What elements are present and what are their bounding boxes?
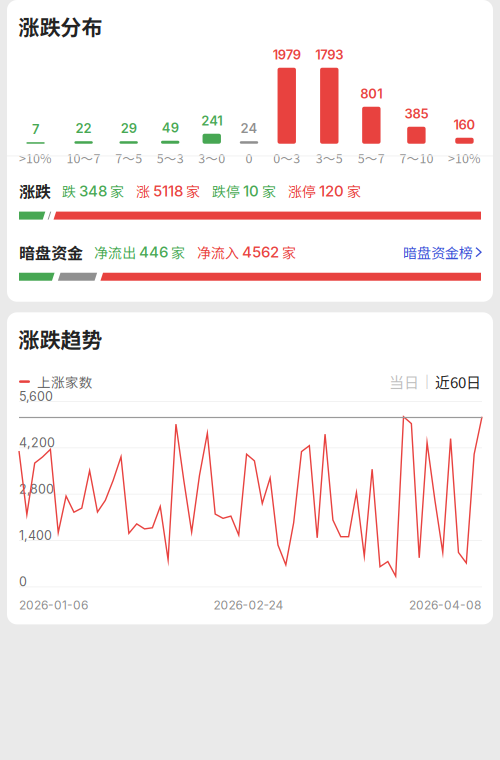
staticText: 5118 <box>153 182 183 200</box>
staticText: 1,400 <box>19 528 52 543</box>
staticText: 241 <box>201 113 222 129</box>
staticText: 家 <box>347 181 361 201</box>
staticText: 涨 <box>136 181 150 201</box>
button[interactable]: 近60日 <box>435 371 481 392</box>
staticText: 7～10 <box>399 149 433 167</box>
staticText: 5～7 <box>358 149 385 167</box>
staticText: 涨跌 <box>19 179 51 203</box>
staticText: 3～5 <box>316 149 343 167</box>
staticText: 净流入 <box>197 242 239 262</box>
staticText: 22 <box>76 120 92 136</box>
staticText: 净流出 <box>94 242 136 262</box>
staticText: >10% <box>19 149 52 167</box>
staticText: >10% <box>448 149 481 167</box>
staticText: 2026-04-08 <box>409 598 481 612</box>
staticText: 2026-02-24 <box>213 598 283 612</box>
staticText: 1979 <box>273 47 301 63</box>
staticText: 0 <box>19 574 27 589</box>
staticText: 5,600 <box>19 389 53 404</box>
staticText: 7 <box>32 121 39 137</box>
staticText: 348 <box>79 182 107 200</box>
staticText: 涨跌分布 <box>18 11 102 41</box>
staticText: 2,800 <box>19 481 54 497</box>
staticText: 446 <box>139 243 168 261</box>
staticText: 5～3 <box>157 149 184 167</box>
button[interactable]: 暗盘资金榜 <box>403 242 481 262</box>
staticText: 家 <box>262 181 276 201</box>
staticText: 7～5 <box>115 149 142 167</box>
staticText: 家 <box>110 181 124 201</box>
staticText: 涨跌趋势 <box>18 323 102 354</box>
staticText: 801 <box>360 86 382 102</box>
staticText: 当日 <box>389 371 419 392</box>
staticText: 29 <box>121 120 137 136</box>
staticText: 120 <box>319 182 344 200</box>
staticText: 跌停 <box>212 181 240 201</box>
staticText: 24 <box>240 120 257 136</box>
staticText: 4,200 <box>19 435 55 450</box>
staticText: 上涨家数 <box>37 372 93 391</box>
staticText: 跌 <box>62 181 76 201</box>
staticText: 涨停 <box>288 181 316 201</box>
staticText: 385 <box>404 106 428 122</box>
staticText: 10～7 <box>67 149 101 167</box>
staticText: 10 <box>243 182 259 200</box>
staticText: 家 <box>186 181 200 201</box>
staticText: 49 <box>162 120 179 136</box>
staticText: | <box>425 374 429 389</box>
staticText: 160 <box>453 117 475 133</box>
staticText: 家 <box>282 242 296 262</box>
staticText: 近60日 <box>435 371 481 392</box>
staticText: 0～3 <box>273 149 300 167</box>
staticText: 暗盘资金 <box>19 241 83 264</box>
button[interactable]: 当日 <box>389 371 419 392</box>
staticText: 家 <box>171 242 185 262</box>
staticText: 3～0 <box>198 149 225 167</box>
staticText: 0 <box>245 149 252 167</box>
staticText: 1793 <box>315 47 343 63</box>
staticText: 2026-01-06 <box>19 598 88 612</box>
staticText: 暗盘资金榜 <box>403 242 473 262</box>
staticText: 4562 <box>242 243 279 261</box>
